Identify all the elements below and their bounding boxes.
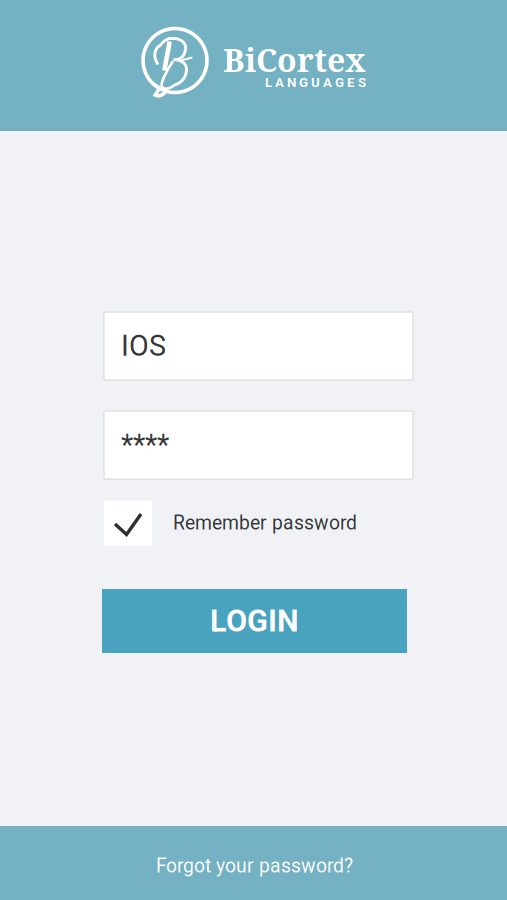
staticText: L A N G U A G E S [265, 75, 366, 90]
staticText: **** [121, 428, 169, 462]
staticText: Forgot your password? [156, 855, 353, 877]
staticText: LOGIN [210, 603, 299, 639]
staticText: BiCortex [223, 38, 366, 81]
staticText: Remember password [173, 512, 357, 534]
button[interactable]: LOGIN [102, 589, 407, 653]
button[interactable]: Forgot your password? [0, 826, 507, 900]
button[interactable]: Remember password [104, 500, 413, 546]
staticText: IOS [121, 329, 166, 363]
